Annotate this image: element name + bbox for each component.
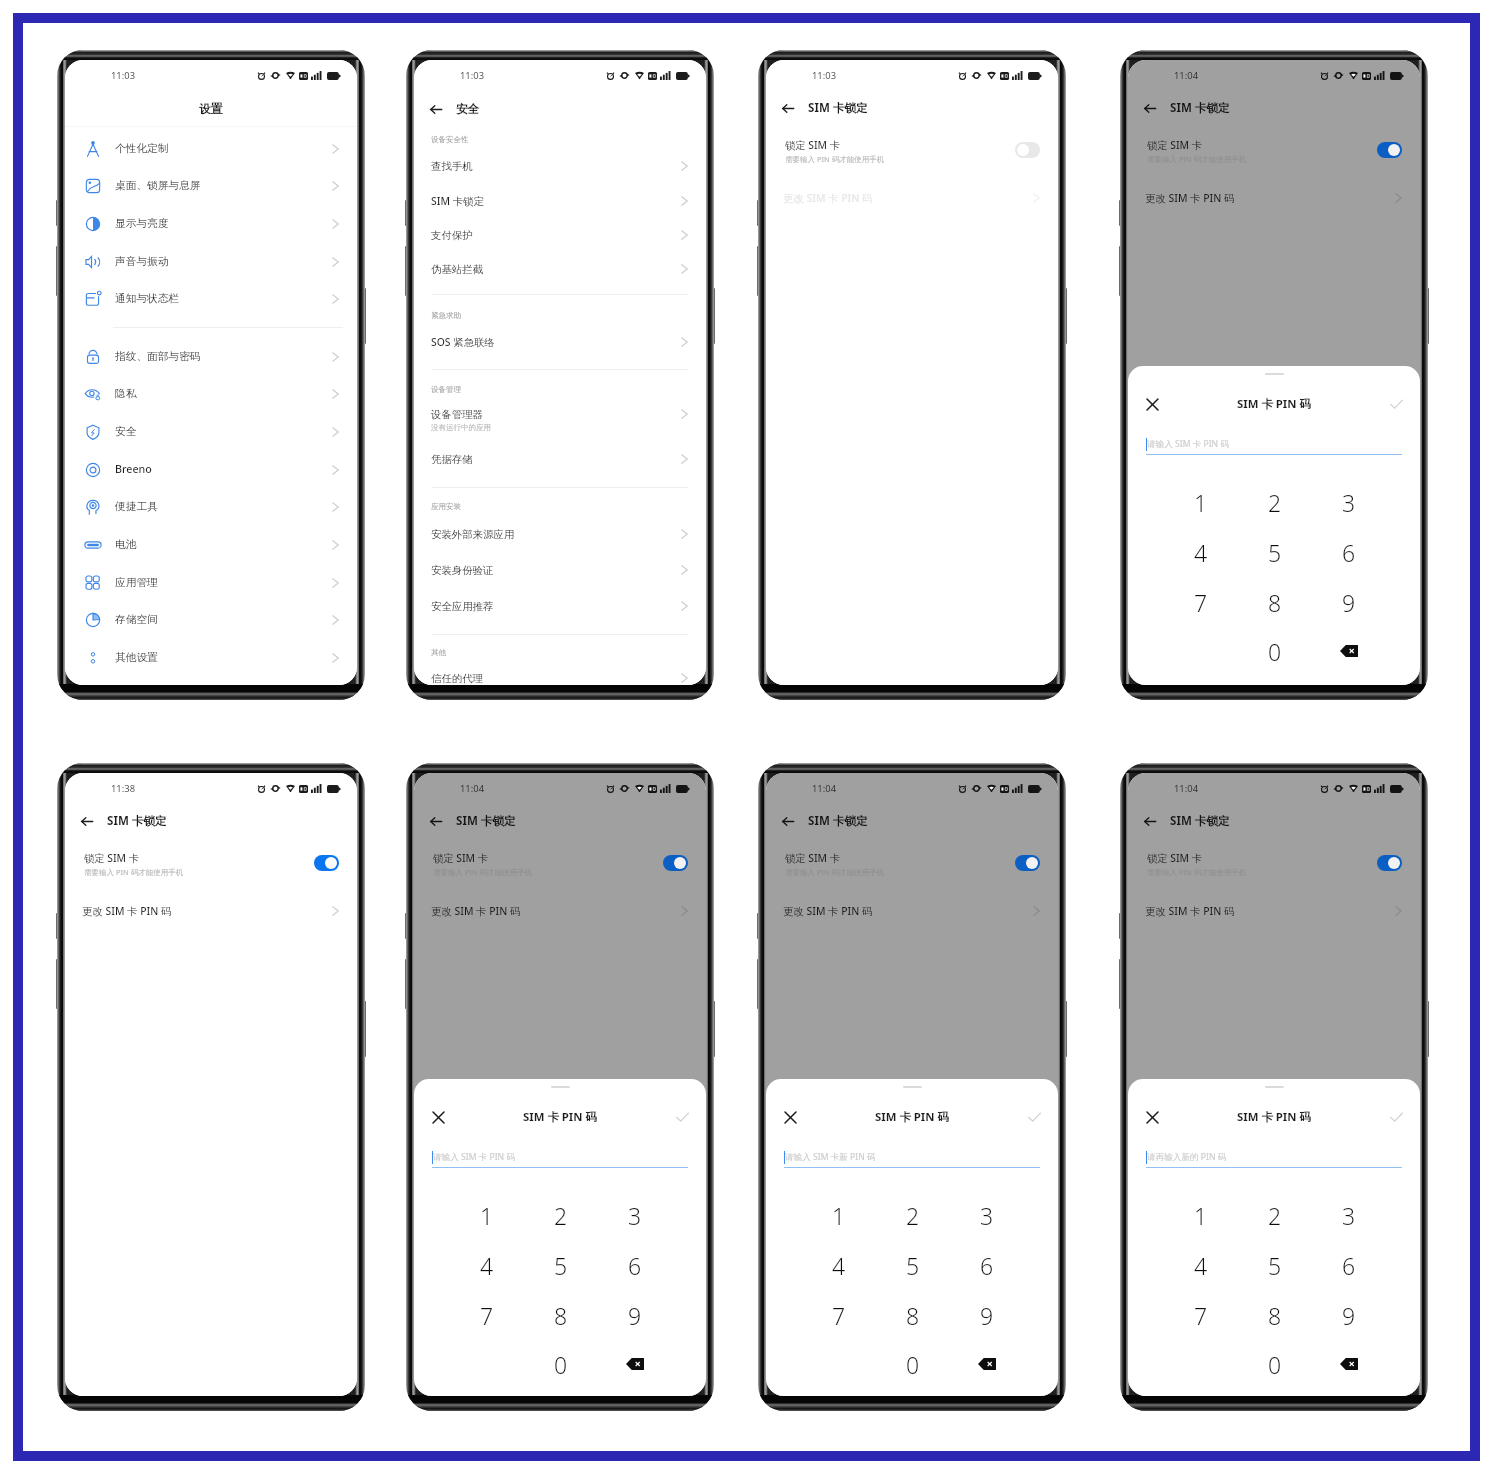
button[interactable]: 0 xyxy=(876,1340,950,1388)
button[interactable]: Switch on xyxy=(65,841,357,885)
button[interactable]: 6 xyxy=(950,1241,1024,1289)
button[interactable]: 1 xyxy=(1164,1191,1238,1239)
button[interactable]: Switch off xyxy=(766,128,1058,172)
button[interactable]: 支付保护 xyxy=(414,218,706,252)
button[interactable]: 查找手机 xyxy=(414,149,706,183)
button[interactable]: Switch on xyxy=(314,855,339,871)
button[interactable]: Back xyxy=(1139,810,1161,832)
button[interactable]: 更改 SIM 卡 PIN 码 xyxy=(65,894,357,928)
button[interactable]: 应用管理 xyxy=(65,564,357,601)
button[interactable]: 2 xyxy=(876,1191,950,1239)
button[interactable]: 3 xyxy=(598,1191,672,1239)
button[interactable]: 3 xyxy=(950,1191,1024,1239)
button[interactable]: 7 xyxy=(1164,578,1238,626)
button[interactable]: Back xyxy=(777,97,799,119)
button[interactable]: 7 xyxy=(802,1291,876,1339)
button[interactable]: 桌面、锁屏与息屏 xyxy=(65,167,357,204)
button[interactable]: 0 xyxy=(524,1340,598,1388)
button[interactable]: Confirm xyxy=(1024,1107,1044,1127)
button[interactable]: 隐私 xyxy=(65,375,357,412)
button[interactable]: Back xyxy=(425,810,447,832)
button[interactable]: SIM 卡锁定 xyxy=(414,184,706,218)
button[interactable]: 2 xyxy=(1238,478,1312,526)
button[interactable]: Backspace xyxy=(1312,1340,1386,1388)
button[interactable]: 安全 xyxy=(65,413,357,450)
button[interactable]: 6 xyxy=(598,1241,672,1289)
button[interactable]: Close xyxy=(780,1107,800,1127)
button[interactable]: Switch on xyxy=(1377,855,1402,871)
button[interactable]: 8 xyxy=(524,1291,598,1339)
button[interactable]: 1 xyxy=(802,1191,876,1239)
button[interactable]: 3 xyxy=(1312,478,1386,526)
button[interactable]: 更改 SIM 卡 PIN 码 xyxy=(766,181,1058,215)
button[interactable]: 更改 SIM 卡 PIN 码 xyxy=(414,894,706,928)
button[interactable]: 8 xyxy=(876,1291,950,1339)
button[interactable]: 1 xyxy=(450,1191,524,1239)
button[interactable]: 7 xyxy=(450,1291,524,1339)
button[interactable]: 1 xyxy=(1164,478,1238,526)
button[interactable]: Switch on xyxy=(1128,128,1420,172)
button[interactable]: 8 xyxy=(1238,578,1312,626)
button[interactable]: Confirm xyxy=(1386,394,1406,414)
button[interactable]: 显示与亮度 xyxy=(65,205,357,242)
button[interactable]: Back xyxy=(1139,97,1161,119)
button[interactable]: Backspace xyxy=(598,1340,672,1388)
button[interactable]: 个性化定制 xyxy=(65,130,357,167)
button[interactable]: 声音与振动 xyxy=(65,243,357,280)
button[interactable]: Back xyxy=(777,810,799,832)
button[interactable]: Back xyxy=(76,810,98,832)
button[interactable]: 6 xyxy=(1312,1241,1386,1289)
button[interactable]: 安装身份验证 xyxy=(414,553,706,587)
button[interactable]: 存储空间 xyxy=(65,601,357,638)
button[interactable]: 5 xyxy=(1238,1241,1312,1289)
button[interactable]: 安全应用推荐 xyxy=(414,589,706,623)
button[interactable]: 更改 SIM 卡 PIN 码 xyxy=(766,894,1058,928)
button[interactable]: Switch on xyxy=(766,841,1058,885)
button[interactable]: Switch on xyxy=(1377,142,1402,158)
button[interactable]: Confirm xyxy=(672,1107,692,1127)
button[interactable]: 9 xyxy=(598,1291,672,1339)
button[interactable]: 信任的代理 xyxy=(414,661,706,685)
button[interactable]: Backspace xyxy=(1312,627,1386,675)
button[interactable]: 9 xyxy=(1312,1291,1386,1339)
button[interactable]: 2 xyxy=(524,1191,598,1239)
button[interactable]: 便捷工具 xyxy=(65,488,357,525)
button[interactable]: 伪基站拦截 xyxy=(414,252,706,286)
button[interactable]: 其他设置 xyxy=(65,639,357,676)
button[interactable]: Switch off xyxy=(1015,142,1040,158)
button[interactable]: Switch on xyxy=(663,855,688,871)
button[interactable]: 5 xyxy=(876,1241,950,1289)
button[interactable]: 4 xyxy=(450,1241,524,1289)
button[interactable]: 指纹、面部与密码 xyxy=(65,338,357,375)
button[interactable]: 9 xyxy=(950,1291,1024,1339)
button[interactable]: 4 xyxy=(802,1241,876,1289)
button[interactable]: 更改 SIM 卡 PIN 码 xyxy=(1128,181,1420,215)
button[interactable]: Close xyxy=(1142,1107,1162,1127)
button[interactable]: 5 xyxy=(1238,528,1312,576)
button[interactable]: 安装外部来源应用 xyxy=(414,517,706,551)
button[interactable]: Confirm xyxy=(1386,1107,1406,1127)
button[interactable]: 4 xyxy=(1164,528,1238,576)
button[interactable]: Back xyxy=(425,98,447,120)
button[interactable]: 凭据存储 xyxy=(414,442,706,476)
button[interactable]: 0 xyxy=(1238,1340,1312,1388)
button[interactable]: 更改 SIM 卡 PIN 码 xyxy=(1128,894,1420,928)
button[interactable]: 设备管理器 xyxy=(414,397,706,431)
button[interactable]: 3 xyxy=(1312,1191,1386,1239)
button[interactable]: Close xyxy=(428,1107,448,1127)
button[interactable]: 通知与状态栏 xyxy=(65,280,357,317)
button[interactable]: 5 xyxy=(524,1241,598,1289)
button[interactable]: 4 xyxy=(1164,1241,1238,1289)
button[interactable]: 2 xyxy=(1238,1191,1312,1239)
button[interactable]: Switch on xyxy=(1015,855,1040,871)
button[interactable]: Breeno xyxy=(65,451,357,488)
button[interactable]: 9 xyxy=(1312,578,1386,626)
button[interactable]: 6 xyxy=(1312,528,1386,576)
button[interactable]: Close xyxy=(1142,394,1162,414)
button[interactable]: Switch on xyxy=(414,841,706,885)
button[interactable]: 0 xyxy=(1238,627,1312,675)
button[interactable]: 8 xyxy=(1238,1291,1312,1339)
button[interactable]: 电池 xyxy=(65,526,357,563)
button[interactable]: SOS 紧急联络 xyxy=(414,325,706,359)
button[interactable]: Backspace xyxy=(950,1340,1024,1388)
